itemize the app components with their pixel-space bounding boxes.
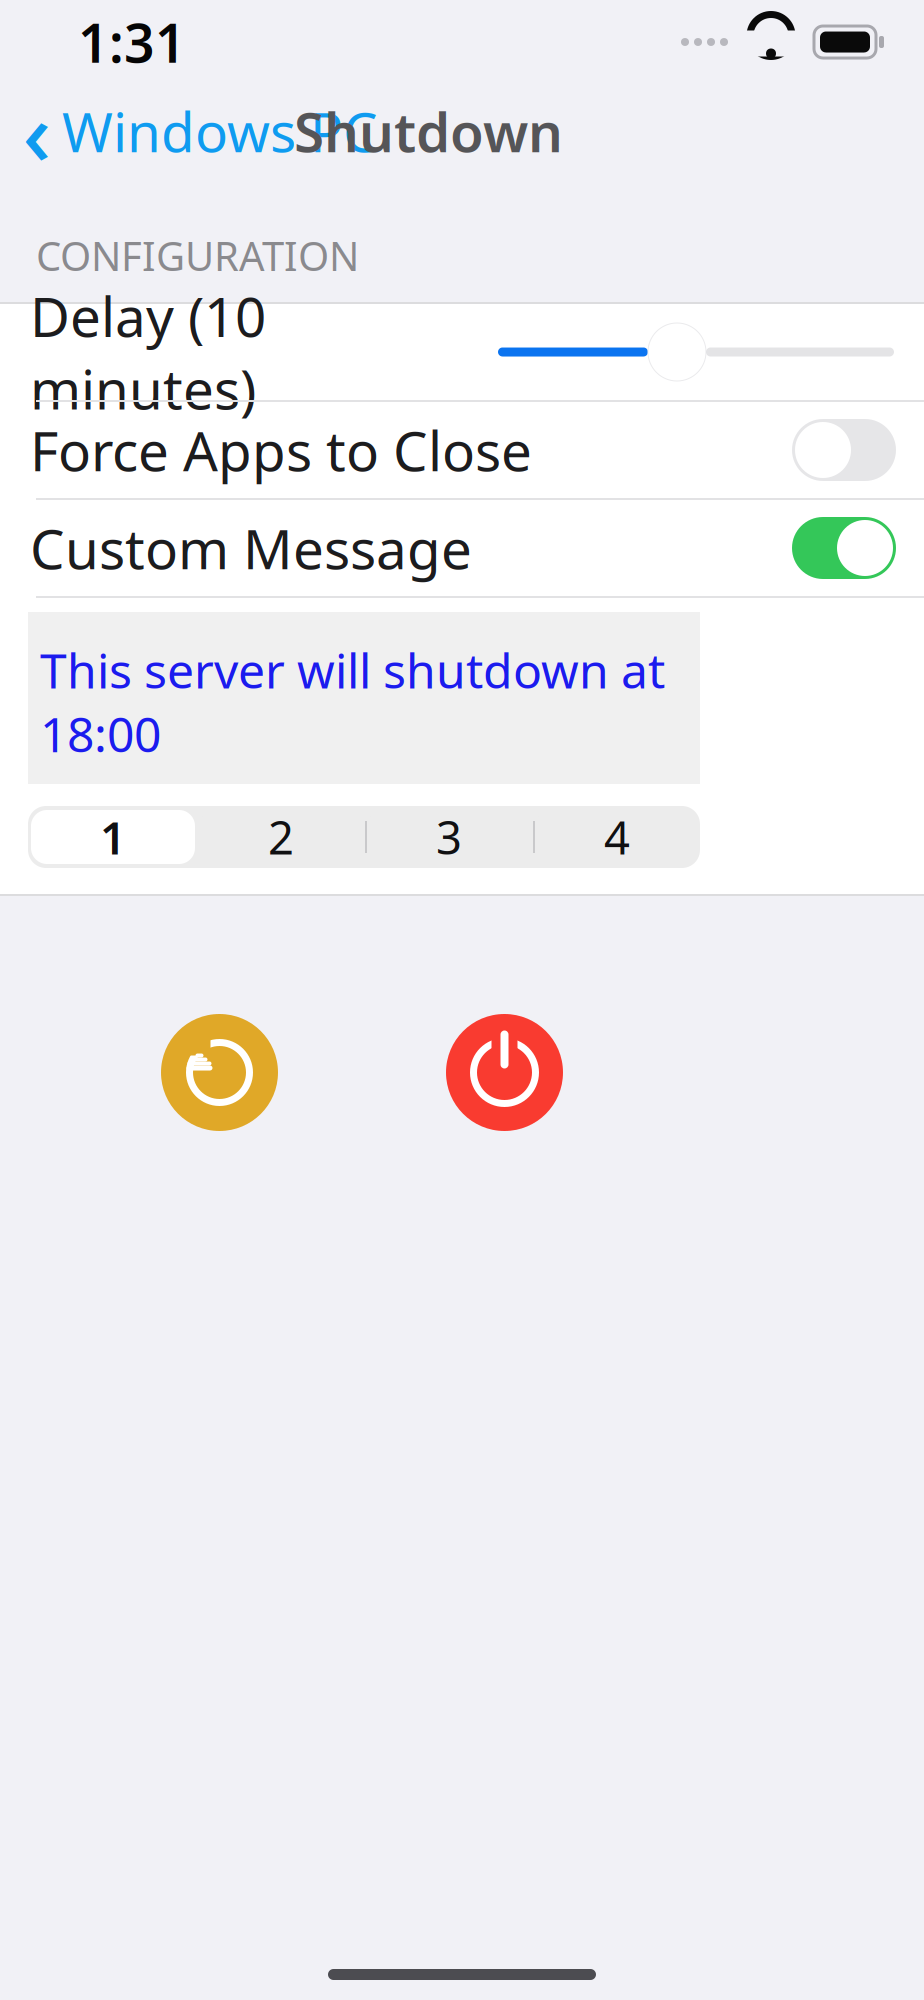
staticText: Windows PC (62, 95, 378, 167)
staticText: Custom Message (30, 512, 472, 584)
button[interactable]: Custom Message (792, 517, 896, 579)
staticText: 3 (436, 807, 462, 867)
button[interactable]: 1 (28, 806, 196, 868)
staticText: 1 (100, 807, 126, 867)
staticText: Force Apps to Close (30, 414, 532, 486)
staticText: CONFIGURATION (36, 229, 359, 282)
button[interactable]: Force Apps to Close (792, 419, 896, 481)
staticText: 1:31 (78, 7, 186, 77)
staticText: ‹ (22, 73, 51, 189)
staticText: This server will shutdown at 18:00 (40, 638, 665, 765)
button[interactable]: ‹ (0, 79, 378, 183)
button[interactable]: This server will shutdown at 18:00 (28, 612, 700, 784)
button[interactable]: 3 (364, 806, 532, 868)
staticText: Shutdown (294, 95, 563, 167)
button[interactable]: 2 (196, 806, 364, 868)
button[interactable]: 4 (532, 806, 700, 868)
staticText: 2 (268, 807, 294, 867)
button[interactable]: Shut Down (446, 1014, 563, 1131)
button[interactable]: Restart (161, 1014, 278, 1131)
staticText: 4 (604, 807, 630, 867)
staticText: Delay (10 minutes) (30, 279, 266, 425)
